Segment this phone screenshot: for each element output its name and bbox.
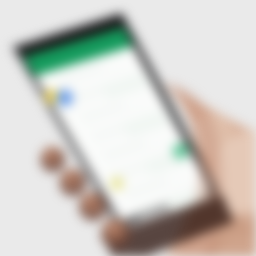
- button[interactable]: [0, 0, 256, 256]
